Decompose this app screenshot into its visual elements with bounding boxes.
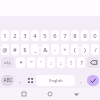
staticText: ) (84, 46, 86, 54)
button[interactable]: ; (57, 57, 65, 68)
staticText: 2 (13, 32, 17, 40)
staticText: ( (74, 46, 76, 54)
button[interactable]: 3 (21, 30, 29, 41)
staticText: 8 (73, 32, 77, 40)
staticText: 5 (43, 32, 47, 40)
staticText: ! (70, 59, 72, 67)
staticText: @ (2, 46, 8, 54)
button[interactable]: $ (21, 44, 29, 55)
button[interactable]: " (27, 57, 35, 68)
staticText: & (43, 46, 48, 54)
button[interactable]: . (77, 75, 85, 86)
button[interactable]: 8 (71, 30, 79, 41)
button[interactable]: @ (1, 44, 9, 55)
button[interactable]: 1 (1, 30, 9, 41)
button[interactable]: / (91, 44, 99, 55)
button[interactable]: Recents (18, 88, 30, 100)
staticText: _ (34, 46, 37, 54)
button[interactable]: ? (77, 57, 85, 68)
button[interactable]: 4 (31, 30, 39, 41)
button[interactable]: Backspace (87, 57, 99, 68)
button[interactable]: 9 (81, 30, 89, 41)
button[interactable]: 2 (11, 30, 19, 41)
staticText: " (30, 59, 33, 67)
button[interactable]: Home (44, 88, 56, 100)
staticText: 9 (83, 32, 87, 40)
button[interactable]: Enter (87, 75, 99, 86)
button[interactable]: Hide keyboard (70, 88, 82, 100)
staticText: + (63, 46, 67, 54)
staticText: * (19, 59, 23, 67)
button[interactable]: + (61, 44, 69, 55)
button[interactable]: 0 (91, 30, 99, 41)
button[interactable]: # (11, 44, 19, 55)
staticText: 6 (53, 32, 57, 40)
button[interactable]: =\< (1, 57, 14, 68)
staticText: 3 (23, 32, 27, 40)
staticText: ' (40, 59, 42, 67)
button[interactable]: _ (31, 44, 39, 55)
staticText: 0 (93, 32, 97, 40)
button[interactable]: ABC (1, 75, 14, 86)
staticText: ; (60, 59, 62, 67)
button[interactable]: Emoji (26, 75, 34, 86)
staticText: ? (80, 59, 83, 67)
button[interactable]: ( (71, 44, 79, 55)
staticText: - (54, 46, 56, 54)
staticText: # (13, 46, 17, 54)
button[interactable]: 6 (51, 30, 59, 41)
button[interactable]: , (16, 75, 24, 86)
staticText: $ (23, 46, 27, 54)
staticText: English (49, 78, 63, 83)
button[interactable]: : (47, 57, 55, 68)
staticText: / (94, 46, 97, 54)
staticText: 4 (33, 32, 37, 40)
staticText: . (80, 77, 82, 85)
button[interactable]: ) (81, 44, 89, 55)
staticText: : (50, 59, 52, 67)
staticText: 7 (63, 32, 67, 40)
button[interactable]: & (41, 44, 49, 55)
staticText: , (19, 77, 21, 85)
staticText: 1 (3, 32, 7, 40)
button[interactable]: * (16, 57, 25, 68)
button[interactable]: ! (67, 57, 75, 68)
button[interactable]: 5 (41, 30, 49, 41)
staticText: =\< (4, 60, 11, 66)
button[interactable]: ' (37, 57, 45, 68)
button[interactable]: English (36, 75, 75, 86)
button[interactable]: - (51, 44, 59, 55)
button[interactable]: 7 (61, 30, 69, 41)
staticText: ABC (3, 77, 13, 84)
